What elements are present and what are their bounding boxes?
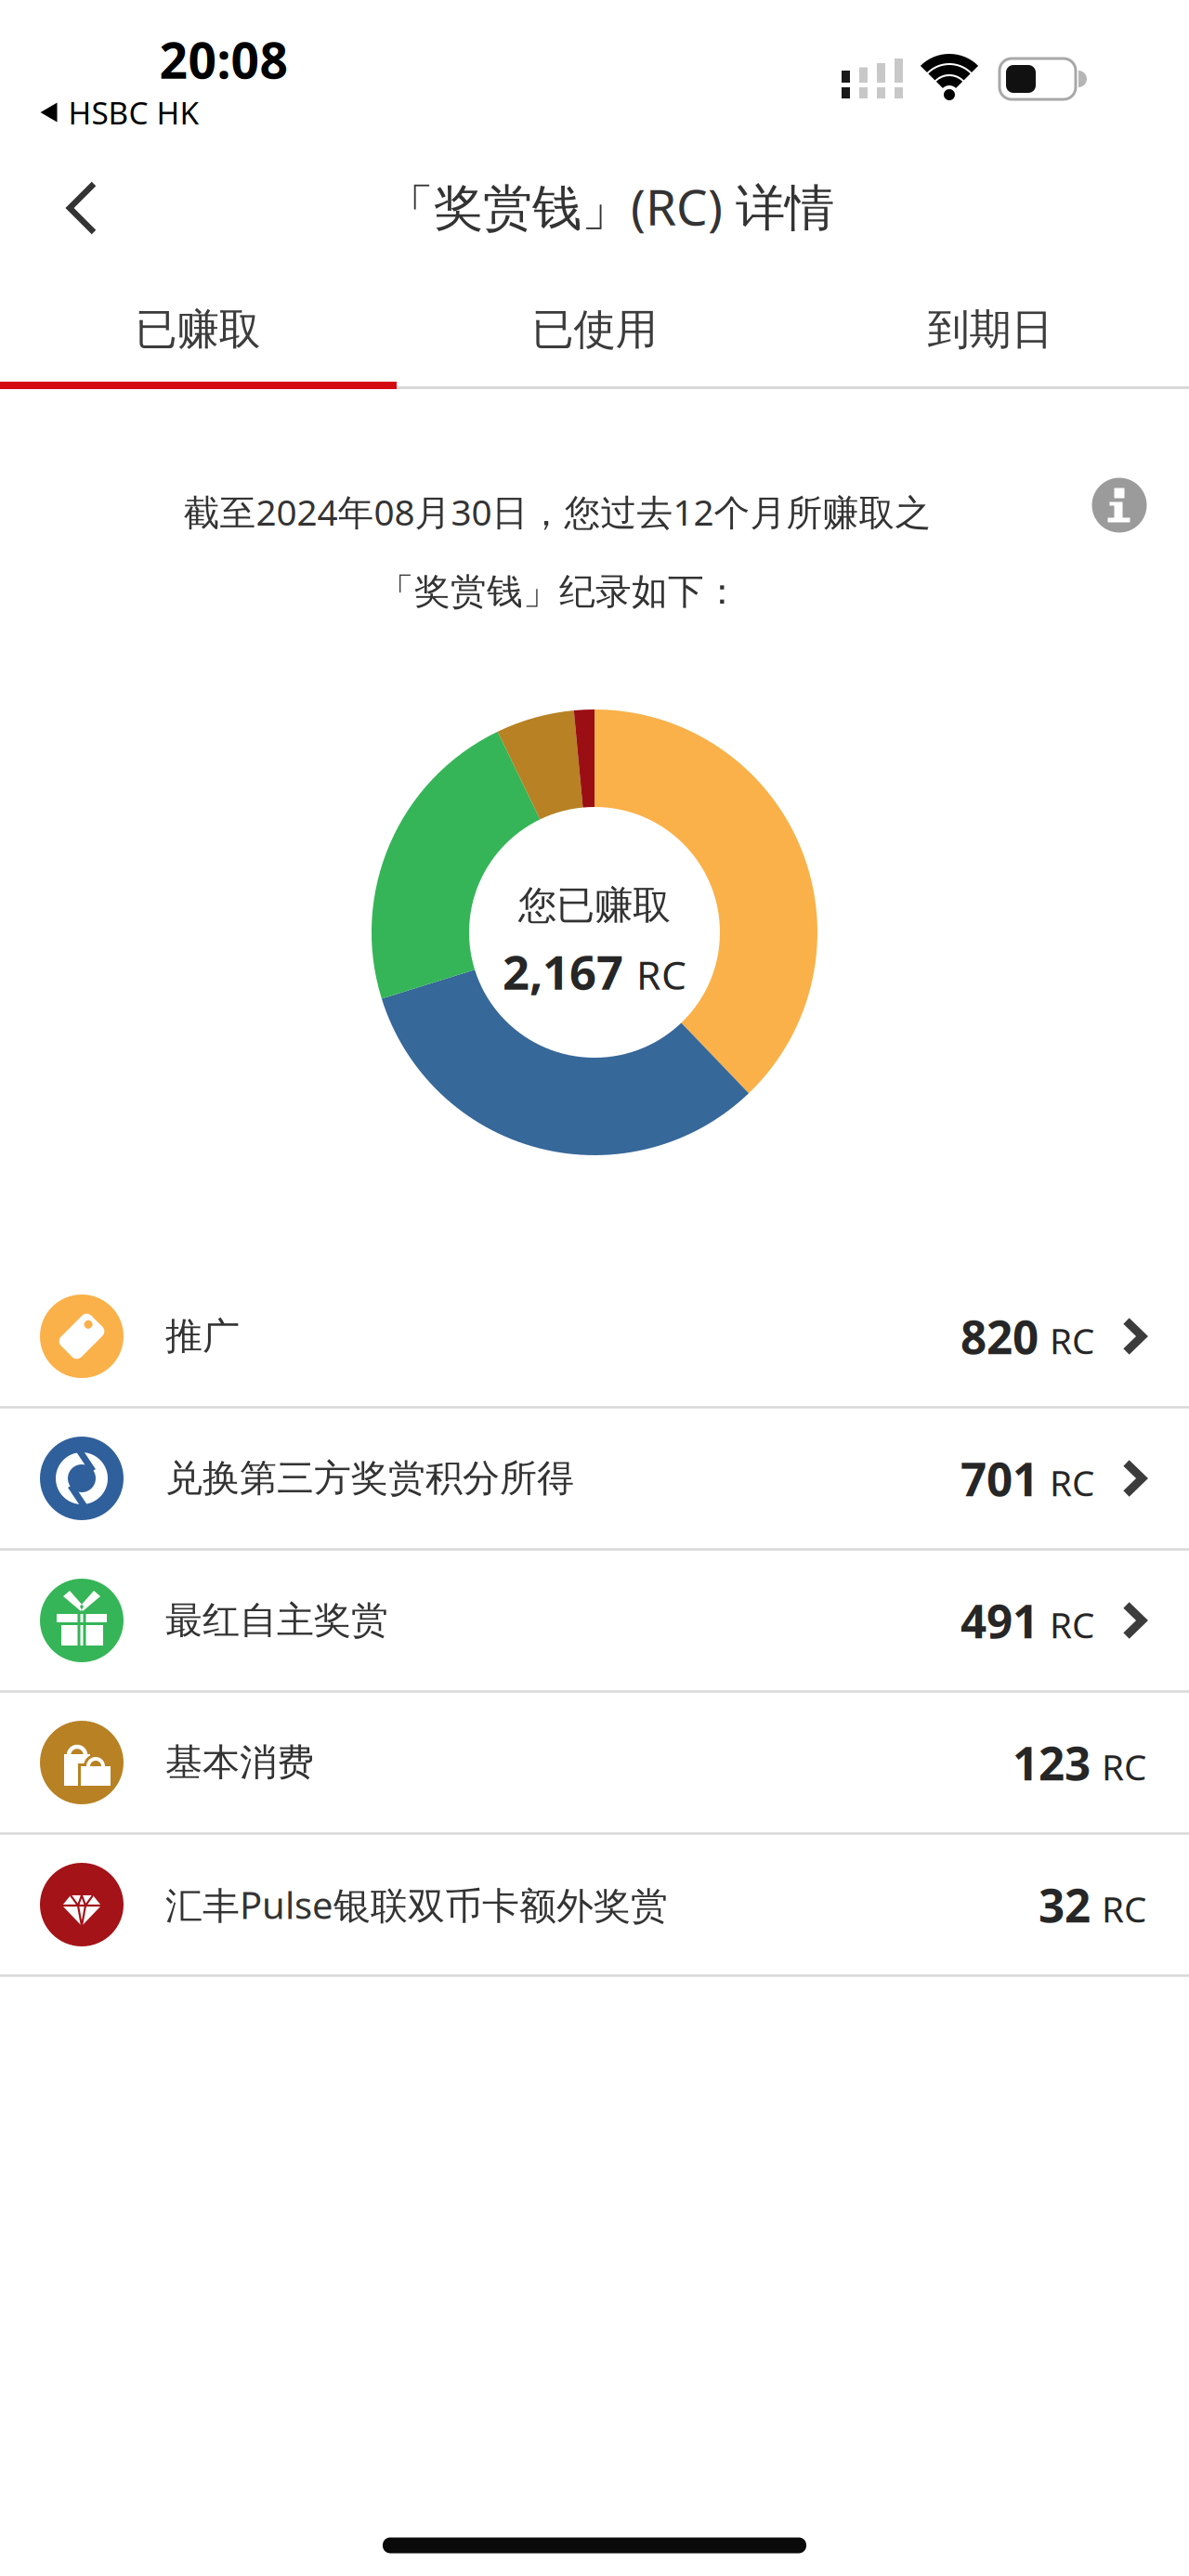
staticText: 汇丰Pulse银联双币卡额外奖赏	[165, 1880, 668, 1929]
staticText: 已使用	[532, 304, 657, 356]
staticText: 701	[960, 1448, 1039, 1509]
staticText: RC	[1050, 1600, 1094, 1648]
staticText: RC	[1050, 1458, 1094, 1506]
staticText: 您已赚取	[518, 882, 671, 929]
staticText: 32	[1039, 1874, 1091, 1935]
staticText: HSBC HK	[68, 92, 199, 133]
staticText: 兑换第三方奖赏积分所得	[165, 1456, 574, 1501]
staticText: 推广	[165, 1313, 240, 1359]
staticText: 截至2024年08月30日，您过去12个月所赚取之	[183, 488, 931, 535]
button[interactable]: Back to HSBC HK	[40, 92, 199, 133]
staticText: RC	[636, 948, 686, 1001]
staticText: 最红自主奖赏	[165, 1598, 388, 1643]
staticText: 「奖赏钱」纪录如下：	[378, 570, 740, 614]
button[interactable]: 兑换第三方奖赏积分所得	[0, 1408, 1189, 1549]
button[interactable]: 推广	[0, 1266, 1189, 1407]
button[interactable]: 已使用	[397, 279, 792, 381]
staticText: RC	[1102, 1743, 1146, 1790]
staticText: RC	[1102, 1885, 1146, 1932]
button[interactable]: 最红自主奖赏	[0, 1550, 1189, 1691]
staticText: 20:08	[159, 27, 288, 92]
button[interactable]: 已赚取	[0, 279, 396, 381]
button[interactable]: 到期日	[792, 279, 1188, 381]
button[interactable]: More information	[1092, 478, 1147, 533]
staticText: 820	[960, 1306, 1039, 1367]
staticText: 已赚取	[135, 304, 261, 356]
staticText: 「奖赏钱」(RC) 详情	[385, 173, 834, 239]
staticText: 基本消费	[165, 1740, 314, 1785]
button[interactable]: Back	[66, 180, 99, 236]
staticText: RC	[1050, 1316, 1094, 1364]
staticText: 2,167	[503, 940, 623, 1003]
staticText: 491	[960, 1590, 1039, 1651]
staticText: 到期日	[928, 304, 1053, 356]
staticText: 123	[1013, 1732, 1091, 1793]
